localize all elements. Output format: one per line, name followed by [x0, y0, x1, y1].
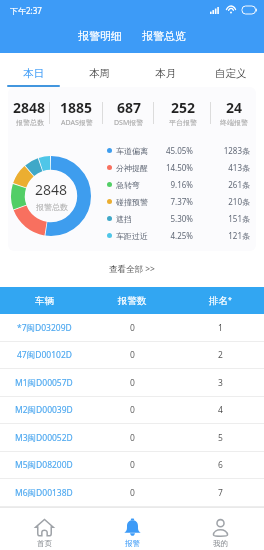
- staticText: 我的: [213, 539, 228, 548]
- button[interactable]: 报警: [88, 508, 176, 550]
- staticText: 0: [130, 404, 135, 416]
- staticText: 2848: [13, 98, 46, 117]
- staticText: 0: [130, 487, 135, 499]
- staticText: 252: [171, 98, 196, 117]
- button[interactable]: 本周: [66, 53, 132, 87]
- staticText: 分神提醒: [116, 163, 148, 173]
- staticText: 121条: [193, 230, 250, 241]
- staticText: 0: [130, 349, 135, 361]
- button[interactable]: 本月: [132, 53, 198, 87]
- staticText: 9.16%: [160, 179, 193, 190]
- staticText: 首页: [37, 539, 52, 548]
- button[interactable]: 查看全部 >>: [101, 259, 163, 279]
- button[interactable]: 我的: [176, 508, 264, 550]
- staticText: 排名: [209, 295, 228, 307]
- staticText: 0: [130, 432, 135, 444]
- staticText: 1283条: [193, 145, 250, 156]
- staticText: M1闽D00057D: [15, 377, 73, 389]
- staticText: DSM报警: [114, 118, 144, 128]
- other: 报警: [123, 518, 142, 537]
- staticText: 报警总览: [142, 29, 186, 43]
- button[interactable]: M6闽D00138D: [0, 479, 264, 507]
- staticText: 413条: [193, 162, 250, 173]
- staticText: 6: [218, 459, 223, 471]
- staticText: 2848: [35, 180, 68, 199]
- button[interactable]: 47闽D00102D: [0, 342, 264, 369]
- staticText: 14.50%: [160, 162, 193, 173]
- staticText: 车道偏离: [116, 146, 148, 156]
- staticText: 261条: [193, 179, 250, 190]
- button[interactable]: 报警总览: [138, 28, 190, 44]
- staticText: 车距过近: [116, 231, 148, 241]
- staticText: 平台报警: [169, 118, 197, 127]
- staticText: 1: [218, 322, 223, 334]
- staticText: M5闽D08200D: [15, 459, 73, 471]
- staticText: 碰撞预警: [116, 197, 148, 207]
- other: 我的: [211, 518, 230, 537]
- staticText: 急转弯: [116, 180, 140, 190]
- button[interactable]: *7闽D03209D: [0, 314, 264, 342]
- staticText: 687: [117, 98, 142, 117]
- button[interactable]: M5闽D08200D: [0, 452, 264, 479]
- staticText: 查看全部 >>: [109, 263, 155, 275]
- button[interactable]: 本日: [0, 53, 66, 87]
- staticText: 5.30%: [160, 213, 193, 224]
- staticText: 151条: [193, 213, 250, 224]
- staticText: 7.37%: [160, 196, 193, 207]
- staticText: 下午2:37: [10, 5, 42, 16]
- staticText: 本周: [89, 67, 110, 80]
- staticText: 遮挡: [116, 214, 132, 224]
- staticText: 车辆: [35, 295, 54, 307]
- staticText: M6闽D00138D: [15, 487, 73, 499]
- staticText: 本日: [23, 67, 44, 80]
- staticText: 47闽D00102D: [17, 349, 72, 361]
- staticText: M2闽D00039D: [15, 404, 73, 416]
- staticText: M3闽D00052D: [15, 432, 73, 444]
- button[interactable]: 首页: [0, 508, 88, 550]
- staticText: 4.25%: [160, 230, 193, 241]
- staticText: 7: [218, 487, 223, 499]
- staticText: 45.05%: [160, 145, 193, 156]
- staticText: 0: [130, 377, 135, 389]
- staticText: 5: [218, 432, 223, 444]
- staticText: 24: [226, 98, 243, 117]
- staticText: 自定义: [215, 67, 247, 80]
- staticText: 本月: [155, 67, 176, 80]
- button[interactable]: M2闽D00039D: [0, 397, 264, 424]
- staticText: *: [228, 295, 232, 305]
- staticText: 报警数: [118, 295, 147, 307]
- staticText: 0: [130, 459, 135, 471]
- staticText: 终端报警: [220, 118, 248, 127]
- staticText: 0: [130, 322, 135, 334]
- button[interactable]: M1闽D00057D: [0, 369, 264, 397]
- staticText: 4: [218, 404, 223, 416]
- button[interactable]: 报警明细: [74, 28, 126, 44]
- staticText: 210条: [193, 196, 250, 207]
- button[interactable]: 自定义: [198, 53, 264, 87]
- other: 首页: [35, 518, 54, 537]
- staticText: ADAS报警: [61, 118, 93, 128]
- button[interactable]: M3闽D00052D: [0, 424, 264, 452]
- staticText: 报警总数: [36, 202, 68, 212]
- staticText: 报警明细: [78, 29, 122, 43]
- staticText: *7闽D03209D: [17, 322, 72, 334]
- staticText: 1885: [60, 98, 93, 117]
- staticText: 3: [218, 377, 223, 389]
- staticText: 2: [218, 349, 223, 361]
- staticText: 报警: [125, 539, 140, 548]
- staticText: 报警总数: [16, 118, 44, 127]
